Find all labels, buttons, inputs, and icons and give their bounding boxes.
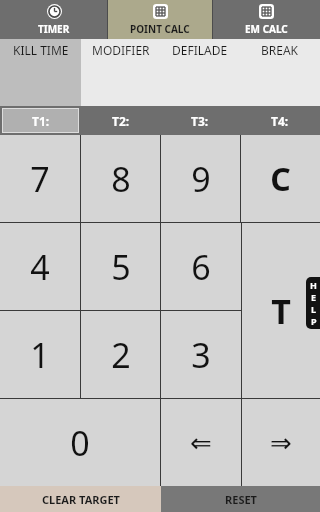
- button[interactable]: 5: [81, 223, 160, 310]
- staticText: 1: [30, 332, 50, 378]
- staticText: DEFILADE: [172, 42, 228, 58]
- button[interactable]: T4:: [240, 106, 320, 135]
- button[interactable]: T2:: [81, 106, 160, 135]
- button[interactable]: ⇒: [242, 399, 320, 486]
- staticText: KILL TIME: [13, 42, 69, 58]
- staticText: T4:: [271, 113, 289, 129]
- staticText: CLEAR TARGET: [42, 492, 120, 507]
- button[interactable]: 2: [81, 311, 160, 398]
- button[interactable]: MODIFIER: [81, 39, 160, 58]
- button[interactable]: 3: [161, 311, 241, 398]
- button[interactable]: T: [242, 223, 320, 398]
- button[interactable]: KILL TIME: [0, 39, 81, 106]
- staticText: EM CALC: [245, 22, 288, 36]
- button[interactable]: 1: [0, 311, 80, 398]
- button[interactable]: POINT CALC: [108, 0, 212, 39]
- staticText: 9: [191, 156, 211, 202]
- staticText: P: [311, 315, 317, 327]
- staticText: T1:: [32, 113, 50, 129]
- staticText: BREAK: [261, 42, 299, 58]
- staticText: T2:: [112, 113, 130, 129]
- button[interactable]: 9: [161, 135, 240, 222]
- staticText: 7: [30, 156, 50, 202]
- staticText: E: [311, 291, 317, 303]
- staticText: 4: [30, 244, 50, 290]
- button[interactable]: T3:: [160, 106, 240, 135]
- staticText: 6: [191, 244, 211, 290]
- staticText: 8: [111, 156, 131, 202]
- staticText: H: [310, 279, 317, 291]
- staticText: 2: [111, 332, 131, 378]
- staticText: TIMER: [38, 22, 70, 36]
- staticText: C: [270, 157, 291, 201]
- button[interactable]: 4: [0, 223, 80, 310]
- button[interactable]: EM CALC: [213, 0, 320, 39]
- staticText: L: [311, 303, 317, 315]
- staticText: 3: [191, 332, 211, 378]
- staticText: RESET: [225, 492, 257, 507]
- staticText: ⇒: [270, 428, 292, 458]
- button[interactable]: DEFILADE: [160, 39, 240, 58]
- button[interactable]: CLEAR TARGET: [0, 486, 161, 512]
- staticText: MODIFIER: [92, 42, 150, 58]
- button[interactable]: RESET: [161, 486, 320, 512]
- staticText: T3:: [191, 113, 209, 129]
- button[interactable]: ⇐: [161, 399, 241, 486]
- staticText: T: [271, 288, 291, 334]
- button[interactable]: 8: [81, 135, 160, 222]
- button[interactable]: BREAK: [240, 39, 320, 58]
- staticText: ⇐: [190, 428, 212, 458]
- staticText: 5: [111, 244, 131, 290]
- button[interactable]: C: [241, 135, 320, 222]
- button[interactable]: TIMER: [0, 0, 107, 39]
- button[interactable]: 6: [161, 223, 241, 310]
- button[interactable]: 7: [0, 135, 80, 222]
- button[interactable]: Help: [306, 277, 320, 329]
- staticText: 0: [70, 420, 90, 466]
- staticText: POINT CALC: [130, 22, 190, 36]
- button[interactable]: T1:: [2, 108, 79, 133]
- button[interactable]: 0: [0, 399, 160, 486]
